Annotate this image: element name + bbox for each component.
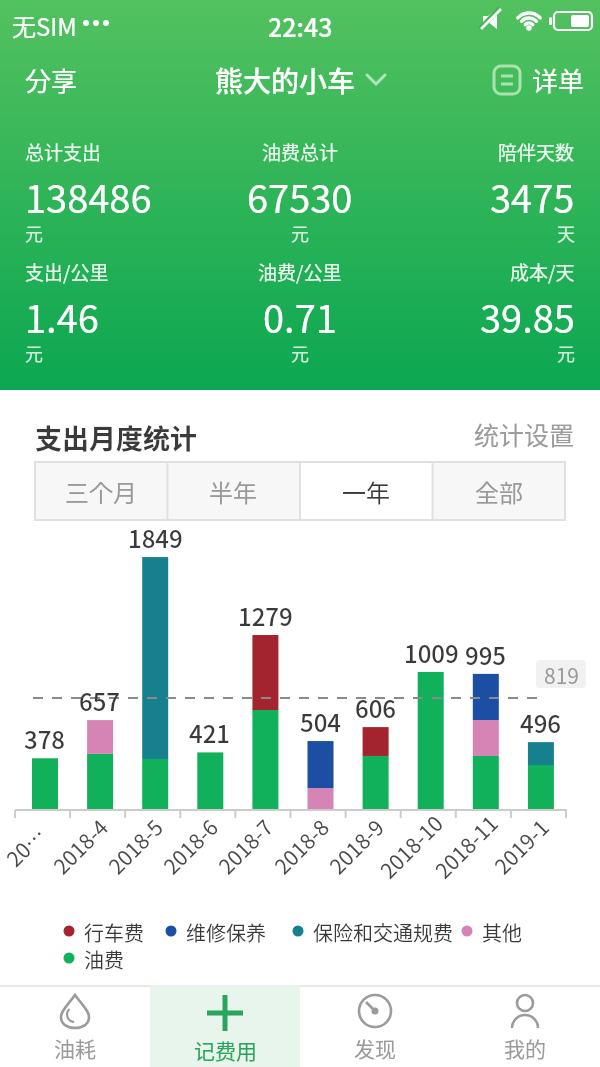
staticText: 1.46 (25, 289, 99, 344)
staticText: 分享 (25, 61, 78, 99)
staticText: 支出月度统计 (35, 418, 197, 457)
staticText: 1279 (238, 598, 293, 632)
staticText: 20… (0, 819, 52, 872)
staticText: 全部 (475, 474, 523, 509)
staticText: 138486 (25, 169, 152, 224)
staticText: 2018-9 (322, 812, 390, 880)
staticText: 一年 (342, 474, 390, 509)
staticText: 记费用 (194, 1035, 257, 1065)
staticText: 2018-8 (267, 812, 335, 880)
staticText: 2018-7 (211, 812, 279, 880)
staticText: 油费总计 (262, 138, 339, 166)
staticText: 421 (189, 715, 231, 749)
staticText: 1849 (128, 520, 183, 554)
staticText: 油费/公里 (258, 258, 342, 286)
staticText: 油费 (84, 945, 124, 974)
staticText: 67530 (247, 169, 353, 224)
button[interactable]: 三个月 (35, 462, 167, 520)
staticText: 无SIM (12, 8, 77, 43)
staticText: 详单 (532, 61, 585, 99)
staticText: 元 (25, 340, 43, 366)
staticText: 元 (291, 340, 309, 366)
staticText: 三个月 (65, 474, 137, 509)
button[interactable]: 油耗 (0, 985, 150, 1067)
staticText: 维修保养 (186, 918, 266, 947)
staticText: 2018-6 (156, 812, 224, 880)
staticText: 总计支出 (25, 138, 102, 166)
staticText: 其他 (482, 918, 522, 947)
button[interactable]: 详单 (492, 58, 600, 102)
button[interactable]: 一年 (299, 462, 432, 520)
staticText: 元 (25, 220, 43, 246)
staticText: 保险和交通规费 (313, 918, 453, 947)
staticText: 元 (557, 340, 575, 366)
staticText: 半年 (209, 474, 257, 509)
button[interactable]: 记费用 (150, 985, 300, 1067)
staticText: 元 (291, 220, 309, 246)
staticText: 2018-10 (373, 808, 449, 884)
button[interactable]: 半年 (167, 462, 299, 520)
staticText: 2019-1 (487, 812, 555, 880)
staticText: 39.85 (480, 289, 575, 344)
staticText: 819 (544, 660, 579, 688)
staticText: 995 (465, 637, 507, 671)
staticText: 22:43 (268, 8, 333, 44)
staticText: 统计设置 (474, 416, 575, 452)
staticText: 657 (79, 683, 121, 717)
staticText: 陪伴天数 (498, 138, 575, 166)
button[interactable]: 我的 (450, 985, 600, 1067)
button[interactable]: 熊大的小车 (195, 58, 405, 102)
button[interactable]: 全部 (432, 462, 565, 520)
staticText: 378 (24, 721, 66, 755)
staticText: 我的 (504, 1033, 546, 1063)
staticText: 行车费 (84, 918, 144, 947)
staticText: 2018-4 (46, 812, 114, 880)
staticText: 成本/天 (510, 258, 575, 286)
staticText: 发现 (354, 1033, 396, 1063)
button[interactable]: 发现 (300, 985, 450, 1067)
staticText: 606 (355, 690, 397, 724)
staticText: 3475 (490, 169, 575, 224)
staticText: 天 (557, 220, 575, 246)
staticText: 熊大的小车 (215, 60, 356, 101)
button[interactable]: 统计设置 (455, 414, 575, 454)
staticText: 油耗 (54, 1033, 96, 1063)
staticText: 2018-5 (101, 812, 169, 880)
staticText: 0.71 (263, 289, 337, 344)
staticText: 504 (300, 704, 342, 738)
staticText: 496 (520, 705, 562, 739)
staticText: 1009 (404, 635, 459, 669)
staticText: 支出/公里 (25, 258, 109, 286)
staticText: 2018-11 (428, 808, 504, 884)
button[interactable]: 分享 (11, 58, 91, 102)
